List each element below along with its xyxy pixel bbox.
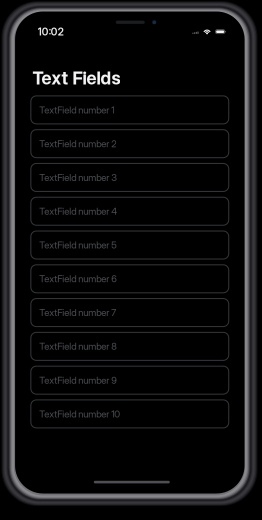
staticText: TextField number 4 (39, 205, 117, 217)
staticText: 10:02 (38, 25, 64, 38)
staticText: TextField number 7 (39, 307, 116, 318)
button[interactable]: TextField number 3 (31, 163, 229, 191)
button[interactable]: TextField number 8 (31, 332, 229, 360)
button[interactable]: TextField number 2 (31, 130, 229, 158)
button[interactable]: TextField number 7 (31, 299, 229, 327)
button[interactable]: TextField number 6 (31, 265, 229, 293)
button[interactable]: TextField number 1 (31, 96, 229, 124)
staticText: TextField number 1 (39, 104, 114, 116)
staticText: TextField number 3 (39, 172, 117, 183)
staticText: TextField number 5 (39, 239, 117, 251)
staticText: TextField number 10 (39, 408, 120, 420)
staticText: TextField number 9 (39, 374, 117, 386)
button[interactable]: TextField number 9 (31, 366, 229, 394)
button[interactable]: TextField number 10 (31, 400, 229, 428)
staticText: TextField number 6 (39, 273, 117, 285)
staticText: TextField number 8 (39, 341, 117, 352)
staticText: TextField number 2 (39, 138, 116, 149)
button[interactable]: TextField number 4 (31, 197, 229, 225)
staticText: Text Fields (32, 67, 120, 89)
button[interactable]: TextField number 5 (31, 231, 229, 259)
